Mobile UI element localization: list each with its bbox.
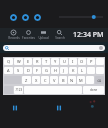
button[interactable]: .?123 bbox=[14, 86, 23, 94]
staticText: Q bbox=[7, 59, 11, 64]
button[interactable]: O bbox=[78, 58, 86, 65]
button[interactable]: Y bbox=[51, 58, 59, 65]
staticText: H bbox=[54, 68, 57, 73]
button[interactable]: I bbox=[69, 58, 77, 65]
staticText: F bbox=[36, 68, 39, 73]
staticText: R bbox=[36, 59, 39, 64]
button[interactable]: C bbox=[41, 76, 49, 84]
staticText: C bbox=[44, 78, 47, 83]
button[interactable]: H bbox=[51, 67, 59, 74]
button[interactable]: N bbox=[68, 76, 76, 84]
button[interactable] bbox=[96, 58, 104, 65]
staticText: W bbox=[17, 59, 21, 64]
button[interactable]: Q bbox=[4, 58, 13, 65]
button[interactable]: Records bbox=[6, 30, 21, 40]
button[interactable]: J bbox=[60, 67, 68, 74]
button[interactable]: W bbox=[14, 58, 23, 65]
staticText: .?123 bbox=[15, 88, 23, 92]
staticText: U bbox=[63, 59, 66, 64]
staticText: I bbox=[72, 59, 74, 64]
button[interactable]: E bbox=[24, 58, 32, 65]
button[interactable]: ⌫ bbox=[95, 76, 104, 84]
button[interactable]: Playback control bbox=[22, 14, 29, 21]
staticText: S bbox=[17, 68, 20, 73]
staticText: V bbox=[53, 78, 56, 83]
button[interactable]: Favorites bbox=[21, 30, 36, 40]
staticText: O bbox=[80, 59, 84, 64]
button[interactable]: K bbox=[69, 67, 77, 74]
staticText: J bbox=[63, 68, 65, 73]
staticText: E bbox=[27, 59, 30, 64]
button[interactable]: Seek bar bbox=[59, 13, 103, 21]
staticText: Y bbox=[54, 59, 57, 64]
staticText: Records bbox=[8, 36, 20, 40]
staticText: Search bbox=[55, 36, 65, 40]
button[interactable] bbox=[96, 67, 104, 74]
staticText: B bbox=[62, 78, 65, 83]
button[interactable]: S bbox=[14, 67, 23, 74]
staticText: X bbox=[35, 78, 38, 83]
button[interactable]: X bbox=[32, 76, 40, 84]
button[interactable]: L bbox=[78, 67, 86, 74]
button[interactable]: Z bbox=[22, 76, 31, 84]
staticText: done bbox=[90, 88, 98, 92]
staticText: G bbox=[45, 68, 48, 73]
staticText: N bbox=[70, 78, 74, 83]
button[interactable]: Playback control bbox=[34, 14, 41, 21]
button[interactable]: U bbox=[60, 58, 68, 65]
button[interactable] bbox=[3, 45, 105, 51]
button[interactable]: Pause bbox=[12, 105, 18, 111]
button[interactable]: M bbox=[77, 76, 85, 84]
button[interactable]: V bbox=[50, 76, 58, 84]
staticText: ⌫ bbox=[97, 79, 102, 82]
button[interactable]: done bbox=[83, 86, 104, 94]
staticText: P bbox=[90, 59, 93, 64]
staticText: 12:34 PM bbox=[73, 30, 104, 40]
staticText: A bbox=[7, 68, 10, 73]
staticText: D bbox=[27, 68, 30, 73]
button[interactable]: T bbox=[42, 58, 50, 65]
staticText: Z bbox=[25, 78, 28, 83]
staticText: T bbox=[45, 59, 48, 64]
button[interactable]: Pause bbox=[56, 105, 62, 111]
button[interactable]: More bbox=[88, 99, 100, 111]
button[interactable] bbox=[87, 67, 95, 74]
button[interactable]: F bbox=[33, 67, 41, 74]
button[interactable]: Search bbox=[52, 30, 67, 40]
staticText: M bbox=[79, 78, 83, 83]
staticText: K bbox=[72, 68, 75, 73]
button[interactable]: G bbox=[42, 67, 50, 74]
button[interactable]: Upload bbox=[36, 30, 51, 40]
staticText: L bbox=[81, 68, 84, 73]
button[interactable]: R bbox=[33, 58, 41, 65]
button[interactable]: Playback control bbox=[10, 14, 17, 21]
staticText: Favorites bbox=[22, 36, 35, 40]
button[interactable]: B bbox=[59, 76, 67, 84]
button[interactable]: D bbox=[24, 67, 32, 74]
button[interactable]: P bbox=[87, 58, 95, 65]
button[interactable]: A bbox=[4, 67, 13, 74]
staticText: Upload bbox=[38, 36, 49, 40]
